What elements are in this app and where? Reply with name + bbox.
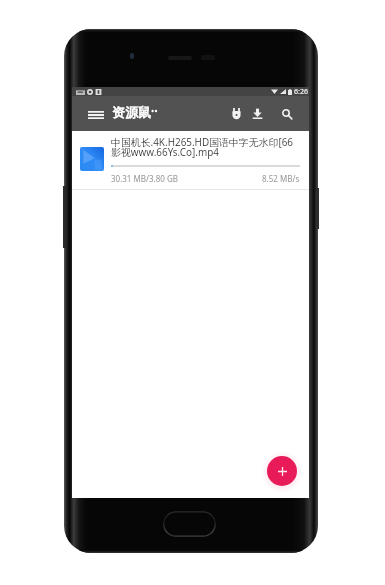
staticText: 30.31 MB/3.80 GB [111,173,178,184]
button[interactable]: Add download [267,456,297,486]
button[interactable]: Power saving mode [222,96,250,131]
staticText: 资源鼠 [112,104,151,120]
staticText: 6:26 [294,87,308,96]
staticText: 中国机长.4K.H265.HD国语中字无水印[66 影视www.66Ys.Co]… [111,135,293,159]
button[interactable]: Open navigation menu [81,96,111,131]
staticText: 8.52 MB/s [262,173,300,184]
button[interactable]: 中国机长.4K.H265.HD国语中字无水印[66 影视www.66Ys.Co]… [72,131,309,190]
button[interactable]: Search [273,96,301,131]
button[interactable]: Downloads [243,96,271,131]
